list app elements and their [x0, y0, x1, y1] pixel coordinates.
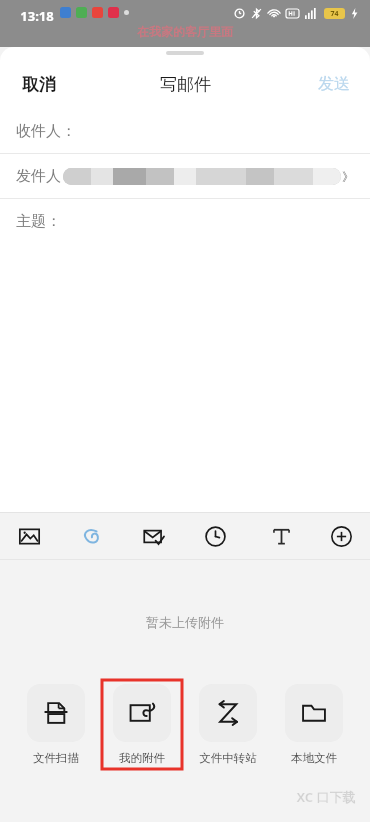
- staticText: 收件人：: [16, 122, 76, 141]
- staticText: 文件扫描: [33, 751, 79, 765]
- button[interactable]: Signature: [74, 519, 108, 553]
- button[interactable]: Read receipt: [136, 519, 170, 553]
- button[interactable]: Schedule send: [198, 519, 232, 553]
- button[interactable]: 我的附件: [102, 680, 182, 769]
- button[interactable]: 文件中转站: [188, 680, 268, 769]
- button[interactable]: 本地文件: [274, 680, 354, 769]
- staticText: 写邮件: [160, 74, 211, 95]
- button[interactable]: More: [324, 519, 358, 553]
- button[interactable]: 发件人: [0, 154, 370, 198]
- button[interactable]: 文件扫描: [16, 680, 96, 769]
- button[interactable]: 取消: [0, 64, 78, 105]
- staticText: 文件中转站: [199, 751, 257, 765]
- staticText: 发送: [318, 74, 350, 94]
- staticText: 本地文件: [291, 751, 337, 765]
- staticText: XC 口下载: [296, 788, 356, 806]
- button[interactable]: 发送: [298, 64, 370, 104]
- staticText: 74: [330, 9, 339, 19]
- button[interactable]: Text format: [264, 519, 298, 553]
- button[interactable]: 主题：: [0, 199, 370, 243]
- staticText: 》: [342, 169, 354, 184]
- staticText: 发件人: [16, 167, 61, 186]
- staticText: 暂未上传附件: [146, 614, 224, 630]
- staticText: 在我家的客厅里面: [137, 24, 233, 39]
- button[interactable]: 收件人：: [0, 109, 370, 153]
- button[interactable]: Insert image: [12, 519, 46, 553]
- staticText: 取消: [22, 74, 56, 95]
- staticText: 13:18: [20, 7, 54, 25]
- staticText: 我的附件: [119, 751, 165, 765]
- staticText: 主题：: [16, 212, 61, 231]
